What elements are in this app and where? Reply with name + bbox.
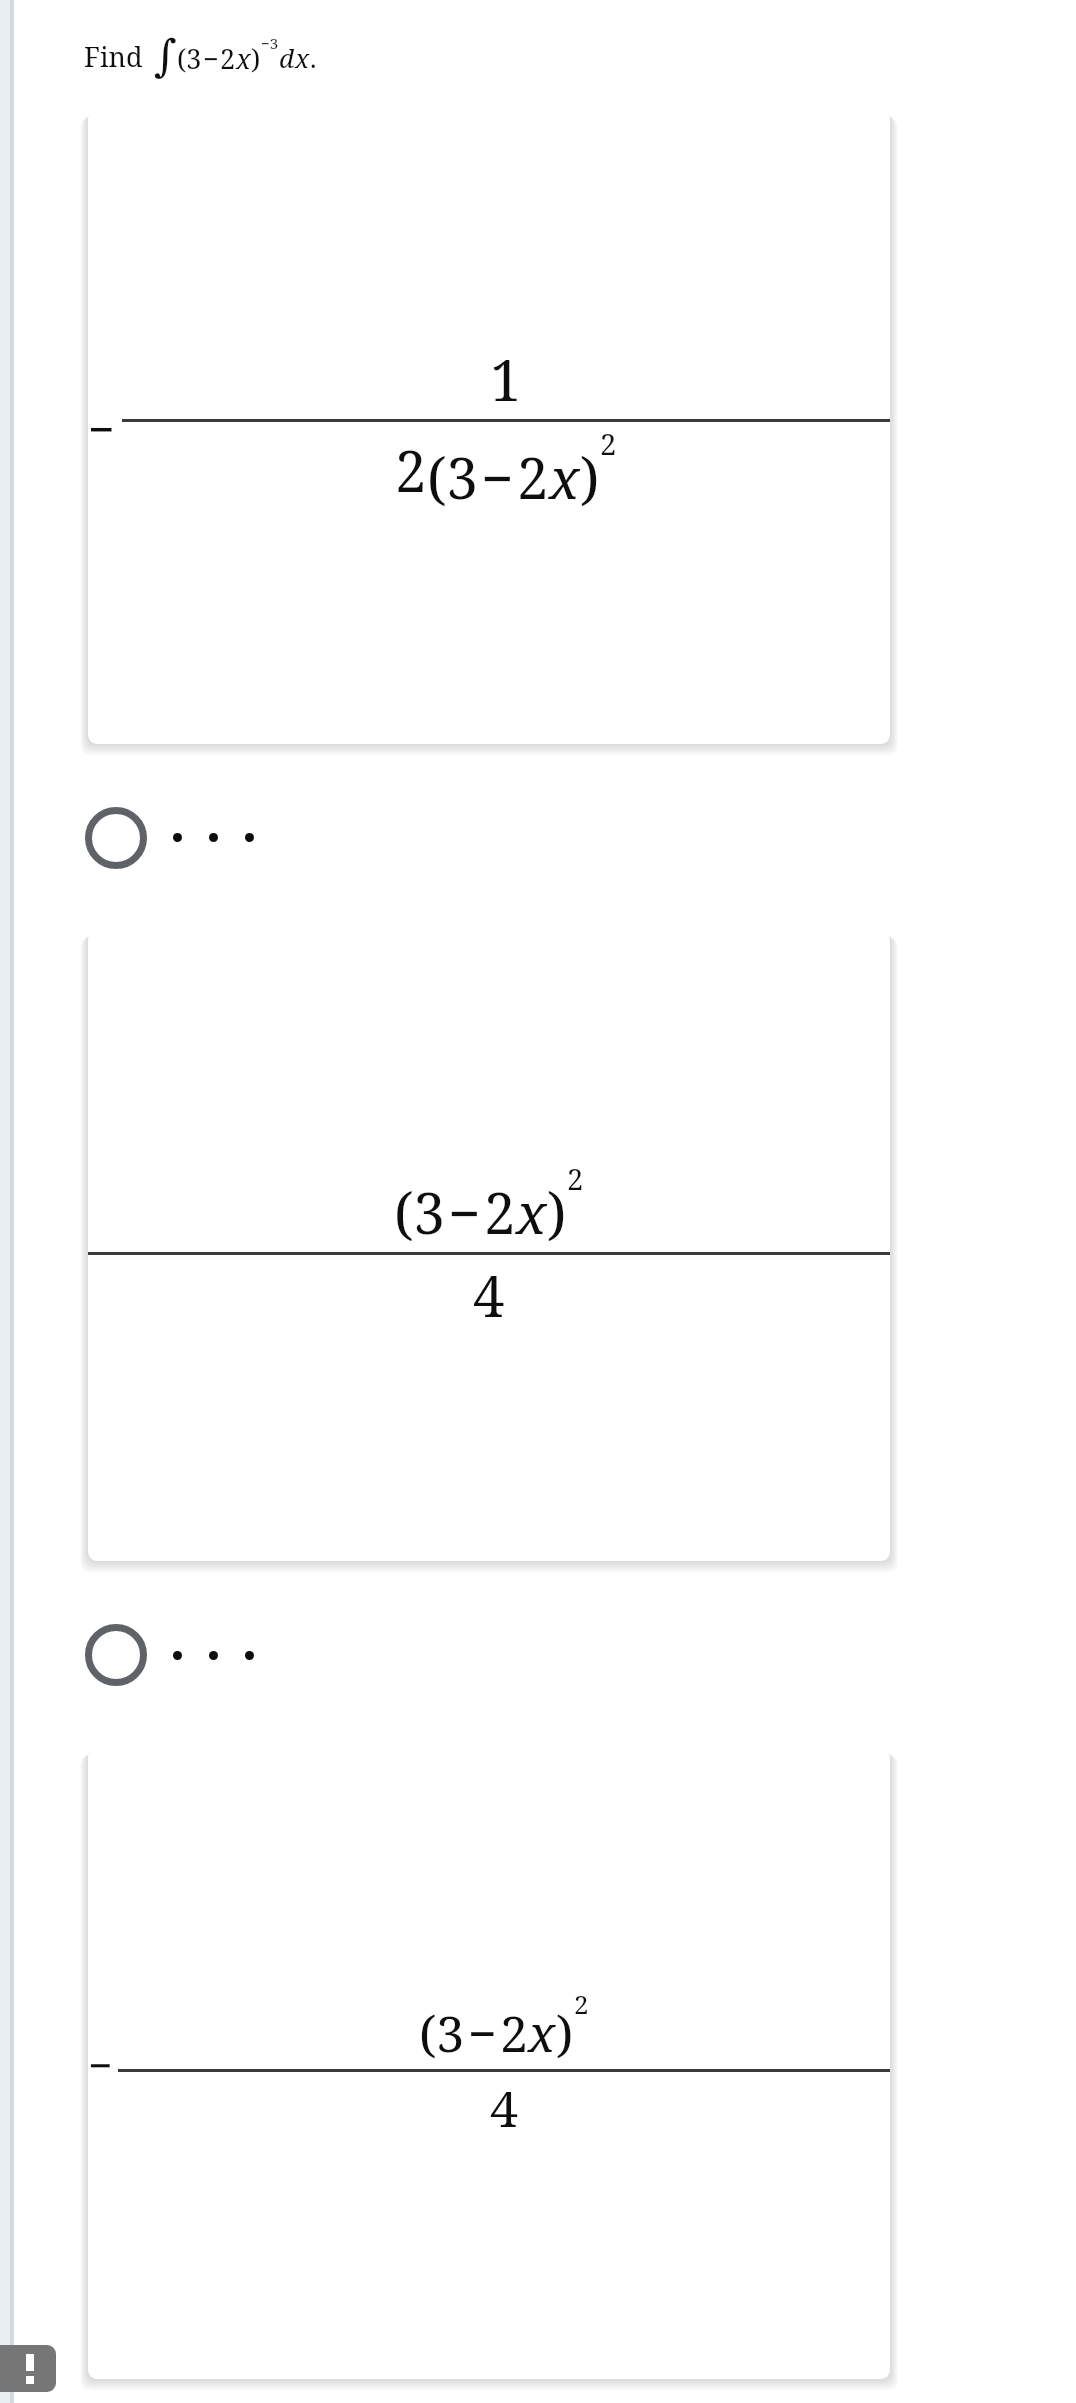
button[interactable]: − — [88, 1749, 890, 2379]
staticText: (3 — [177, 40, 202, 77]
staticText: 2 — [567, 1159, 584, 1199]
staticText: x — [295, 40, 310, 75]
staticText: ) — [547, 1174, 567, 1250]
staticText: 2 — [574, 1986, 589, 2021]
staticText: 2 — [600, 424, 617, 464]
staticText: ) — [556, 1999, 574, 2067]
staticText: − — [88, 397, 115, 460]
staticText: (3 — [427, 439, 478, 515]
staticText: 1 — [490, 341, 522, 417]
staticText: 2 — [517, 439, 549, 515]
staticText: x — [516, 1174, 547, 1250]
staticText: 2 — [220, 40, 236, 77]
staticText: −3 — [261, 33, 279, 53]
button[interactable]: Select this answer — [0, 1561, 1076, 1749]
staticText: d — [279, 40, 295, 75]
staticText: ) — [580, 439, 600, 515]
staticText: x — [236, 40, 251, 77]
button[interactable]: (3 — [88, 931, 890, 1561]
staticText: − — [88, 2036, 113, 2093]
staticText: − — [468, 1999, 497, 2067]
staticText: x — [549, 439, 580, 515]
staticText: 4 — [490, 2074, 518, 2142]
staticText: − — [203, 40, 219, 77]
staticText: ∫ — [154, 30, 177, 81]
staticText: − — [448, 1174, 481, 1250]
staticText: (3 — [394, 1174, 445, 1250]
button[interactable]: − — [88, 111, 890, 744]
staticText: . — [310, 40, 317, 75]
staticText: 2 — [395, 432, 427, 508]
staticText: ) — [251, 40, 261, 77]
staticText: 2 — [484, 1174, 516, 1250]
staticText: (3 — [419, 1999, 465, 2067]
staticText: Find — [84, 38, 143, 75]
staticText: 4 — [473, 1257, 505, 1333]
staticText: − — [481, 439, 514, 515]
button[interactable]: Select this answer — [0, 744, 1076, 931]
staticText: x — [528, 1999, 556, 2067]
staticText: 2 — [500, 1999, 528, 2067]
button[interactable]: Warning — [0, 2345, 56, 2392]
